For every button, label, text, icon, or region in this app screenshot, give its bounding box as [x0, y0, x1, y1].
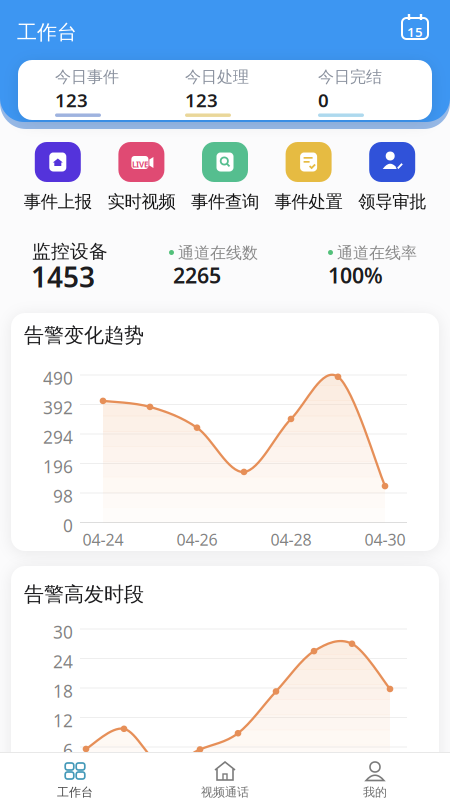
- staticText: 告警变化趋势: [24, 323, 144, 348]
- staticText: 工作台: [57, 785, 93, 800]
- staticText: 24: [53, 650, 73, 673]
- button[interactable]: 视频通话: [150, 761, 300, 800]
- staticText: 今日处理: [185, 67, 249, 87]
- staticText: 告警高发时段: [24, 582, 144, 607]
- staticText: 今日事件: [55, 67, 119, 87]
- staticText: 123: [55, 88, 88, 112]
- staticText: 2265: [173, 261, 221, 289]
- staticText: 实时视频: [107, 191, 175, 212]
- staticText: 15: [407, 23, 423, 41]
- staticText: 通道在线数: [178, 243, 258, 263]
- staticText: 196: [43, 455, 73, 478]
- staticText: 490: [43, 366, 73, 389]
- staticText: 领导审批: [358, 191, 426, 212]
- staticText: 1453: [31, 258, 95, 295]
- button[interactable]: 工作台: [0, 761, 150, 800]
- staticText: 123: [185, 88, 218, 112]
- staticText: 通道在线率: [337, 243, 417, 263]
- staticText: 事件上报: [24, 191, 92, 212]
- staticText: 0: [318, 88, 329, 112]
- staticText: 监控设备: [32, 240, 108, 263]
- staticText: 18: [53, 679, 73, 702]
- button[interactable]: 事件上报: [16, 142, 100, 212]
- staticText: 30: [53, 620, 73, 643]
- staticText: 0: [63, 514, 73, 537]
- staticText: 6: [63, 738, 73, 761]
- staticText: 事件查询: [191, 191, 259, 212]
- staticText: 04-26: [176, 529, 217, 550]
- button[interactable]: 事件处置: [267, 142, 350, 212]
- button[interactable]: 事件查询: [183, 142, 267, 212]
- button[interactable]: LIVE: [100, 142, 183, 212]
- staticText: 98: [53, 484, 73, 507]
- button[interactable]: 我的: [300, 761, 450, 800]
- staticText: 今日完结: [318, 67, 382, 87]
- button[interactable]: 选择日期: [401, 13, 431, 43]
- staticText: 12: [53, 709, 73, 732]
- staticText: 100%: [328, 261, 383, 289]
- staticText: 事件处置: [275, 191, 343, 212]
- staticText: 04-24: [82, 529, 123, 550]
- staticText: 我的: [363, 785, 387, 800]
- staticText: 04-30: [364, 529, 405, 550]
- staticText: 294: [43, 425, 73, 448]
- staticText: 视频通话: [201, 785, 249, 800]
- button[interactable]: 领导审批: [350, 142, 434, 212]
- staticText: 392: [43, 396, 73, 419]
- staticText: LIVE: [132, 159, 148, 170]
- staticText: 04-28: [270, 529, 311, 550]
- staticText: 工作台: [17, 20, 77, 45]
